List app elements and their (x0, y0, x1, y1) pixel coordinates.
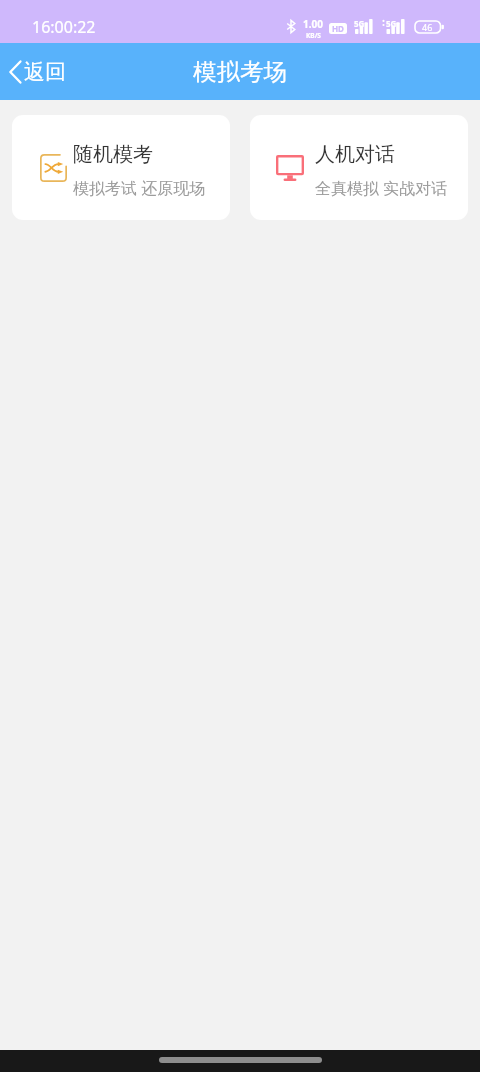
staticText: 46 (422, 21, 433, 33)
staticText: 随机模考 (73, 142, 153, 167)
button[interactable]: 随机模考 (12, 115, 230, 220)
button[interactable]: 人机对话 (250, 115, 468, 220)
staticText: 模拟考试 还原现场 (73, 177, 206, 199)
other: Home (159, 1057, 322, 1063)
staticText: 返回 (24, 59, 66, 85)
staticText: 5G (354, 18, 365, 29)
staticText: 1.00 (303, 17, 323, 31)
staticText: 16:00:22 (32, 16, 96, 38)
staticText: 5G (386, 18, 397, 29)
staticText: 全真模拟 实战对话 (315, 177, 448, 199)
button[interactable]: 返回 Back (0, 49, 80, 95)
staticText: KB/S (306, 31, 321, 40)
staticText: HD (332, 23, 344, 34)
staticText: 模拟考场 (193, 57, 287, 87)
staticText: 人机对话 (315, 142, 395, 167)
